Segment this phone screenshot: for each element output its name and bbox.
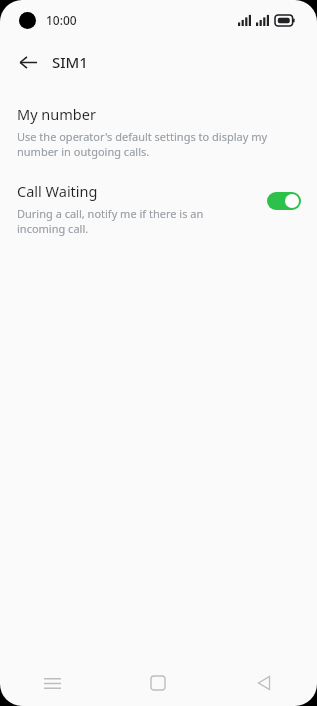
button[interactable]: Call Waiting toggle <box>266 191 302 211</box>
button[interactable]: Back <box>211 660 317 706</box>
button[interactable]: Home <box>105 660 211 706</box>
button[interactable]: Back <box>10 44 46 80</box>
button[interactable]: Call Waiting <box>0 179 317 238</box>
staticText: During a call, notify me if there is an … <box>17 206 245 236</box>
staticText: Use the operator's default settings to d… <box>17 129 302 159</box>
staticText: My number <box>17 104 96 124</box>
button[interactable]: My number <box>0 102 317 161</box>
staticText: 10:00 <box>46 12 77 28</box>
button[interactable]: Recents <box>0 660 105 706</box>
staticText: Call Waiting <box>17 181 98 201</box>
staticText: SIM1 <box>52 52 88 72</box>
